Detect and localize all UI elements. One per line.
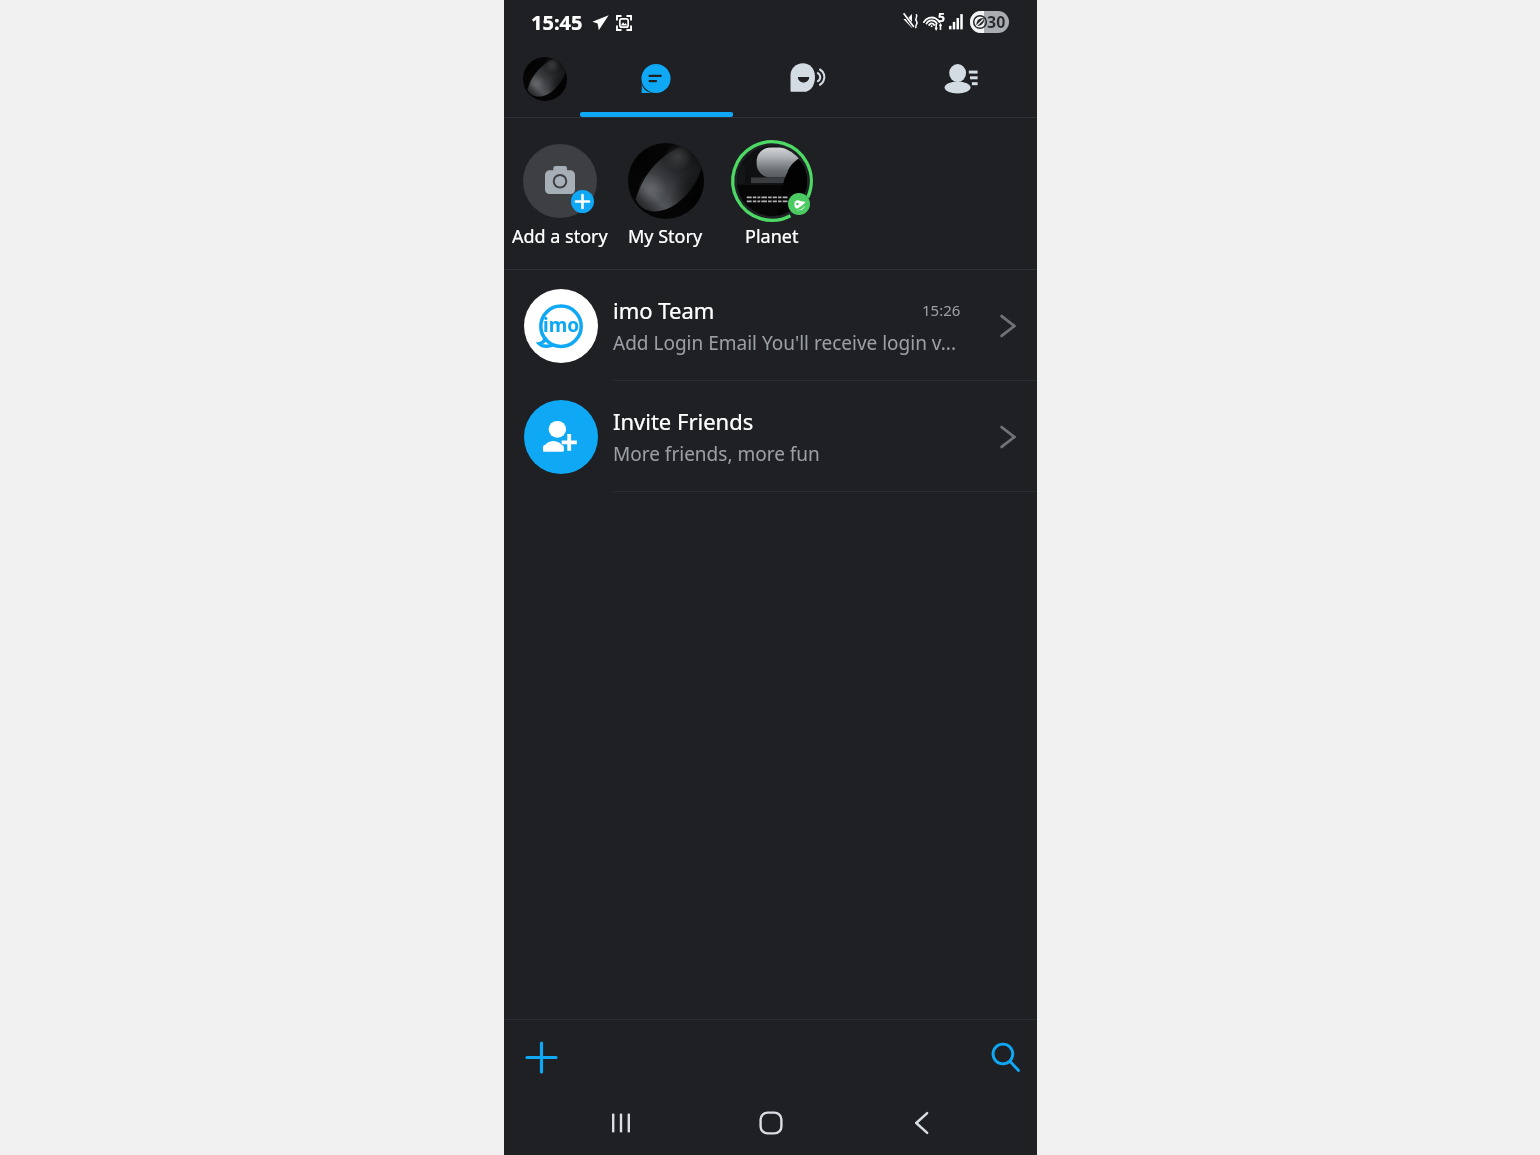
staticText: More friends, more fun xyxy=(613,441,820,467)
button[interactable]: Home xyxy=(751,1091,791,1155)
staticText: Planet xyxy=(745,224,799,249)
staticText: Add Login Email You'll receive login v..… xyxy=(613,330,957,356)
staticText: imo Team xyxy=(613,295,715,325)
button[interactable]: imo xyxy=(504,270,1037,381)
button[interactable]: New chat xyxy=(517,1033,565,1081)
button[interactable]: Planet xyxy=(718,118,825,258)
button[interactable]: Chats xyxy=(580,42,732,114)
button[interactable]: Contacts xyxy=(884,42,1036,114)
staticText: Add a story xyxy=(512,224,608,249)
staticText: 15:45 xyxy=(531,9,583,36)
staticText: 5 xyxy=(938,9,945,25)
button[interactable]: Voice chat xyxy=(732,42,884,114)
button[interactable]: Recents xyxy=(601,1091,641,1155)
button[interactable]: Profile xyxy=(521,55,568,102)
staticText: 15:26 xyxy=(922,300,961,320)
button[interactable]: My Story xyxy=(612,118,719,258)
button[interactable]: Invite Friends xyxy=(504,381,1037,492)
staticText: imo xyxy=(543,312,580,338)
button[interactable]: Add a story xyxy=(506,118,613,258)
staticText: Invite Friends xyxy=(613,406,754,436)
button[interactable]: Search xyxy=(981,1033,1029,1081)
staticText: My Story xyxy=(628,224,703,249)
button[interactable]: Back xyxy=(902,1091,942,1155)
staticText: 30 xyxy=(987,11,1006,33)
